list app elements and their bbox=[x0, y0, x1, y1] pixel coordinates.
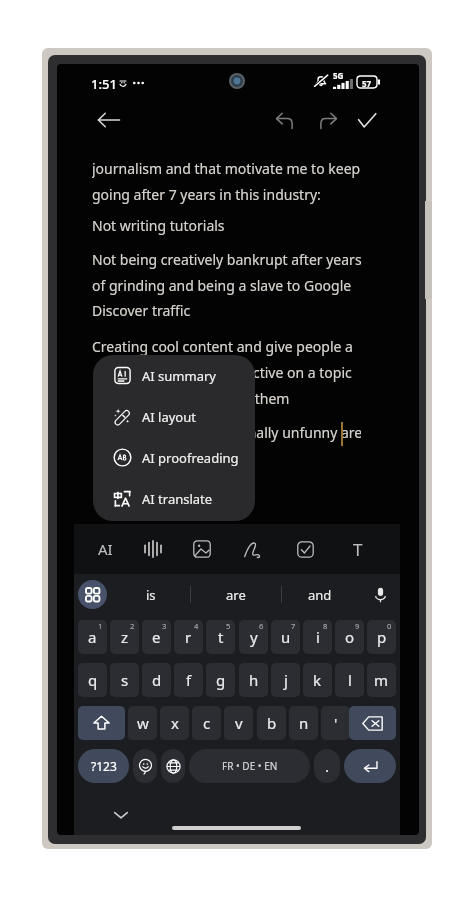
staticText: are bbox=[226, 586, 246, 604]
staticText: o bbox=[345, 627, 355, 647]
staticText: AI summary bbox=[142, 367, 216, 385]
staticText: Being sarcastic and intentionally unfunn… bbox=[66, 423, 361, 442]
button[interactable]: Symbols bbox=[78, 749, 129, 783]
button[interactable]: and bbox=[290, 580, 350, 609]
button[interactable]: u bbox=[271, 620, 300, 654]
button[interactable]: g bbox=[206, 663, 235, 697]
staticText: q bbox=[88, 670, 98, 690]
button[interactable]: AI summary bbox=[93, 355, 255, 396]
staticText: d bbox=[152, 670, 162, 690]
staticText: 57 bbox=[362, 78, 372, 89]
staticText: journalism and that motivate me to keep bbox=[92, 159, 361, 178]
staticText: n bbox=[299, 713, 309, 733]
button[interactable]: are bbox=[206, 580, 266, 609]
button[interactable]: AI layout bbox=[93, 396, 255, 437]
button[interactable]: Done bbox=[350, 103, 384, 137]
staticText: s bbox=[121, 670, 129, 690]
staticText: i bbox=[316, 627, 320, 647]
staticText: ?123 bbox=[91, 758, 117, 774]
button[interactable]: Emoji bbox=[133, 749, 157, 783]
staticText: 6 bbox=[259, 621, 264, 631]
staticText: x bbox=[171, 713, 179, 733]
staticText: FR • DE • EN bbox=[222, 759, 278, 773]
button[interactable]: Voice input bbox=[366, 580, 395, 609]
button[interactable]: Hide keyboard bbox=[106, 800, 136, 830]
staticText: ' bbox=[334, 713, 338, 733]
staticText: is bbox=[146, 586, 156, 604]
button[interactable]: AI proofreading bbox=[93, 437, 255, 478]
staticText: AI bbox=[98, 539, 113, 559]
button[interactable]: e bbox=[142, 620, 171, 654]
button[interactable]: c bbox=[192, 706, 221, 740]
staticText: 1 bbox=[98, 621, 103, 631]
button[interactable]: d bbox=[142, 663, 171, 697]
staticText: 0 bbox=[387, 621, 392, 631]
button[interactable]: v bbox=[224, 706, 253, 740]
button[interactable]: y bbox=[239, 620, 268, 654]
button[interactable]: Voice bbox=[134, 530, 172, 568]
button[interactable]: z bbox=[110, 620, 139, 654]
button[interactable]: p bbox=[367, 620, 396, 654]
staticText: r bbox=[185, 627, 192, 647]
staticText: m bbox=[374, 670, 389, 690]
button[interactable]: Back bbox=[91, 103, 125, 137]
staticText: Not being creatively bankrupt after year… bbox=[92, 250, 362, 269]
staticText: of grinding and being a slave to Google bbox=[92, 276, 352, 295]
staticText: h bbox=[249, 670, 259, 690]
button[interactable]: Change language bbox=[161, 749, 185, 783]
button[interactable]: AI bbox=[86, 530, 124, 568]
staticText: b bbox=[267, 713, 277, 733]
button[interactable]: m bbox=[367, 663, 396, 697]
staticText: w bbox=[137, 713, 149, 733]
button[interactable]: a bbox=[78, 620, 107, 654]
button[interactable]: w bbox=[128, 706, 157, 740]
button[interactable]: Shift bbox=[78, 706, 125, 740]
button[interactable]: ' bbox=[321, 706, 350, 740]
button[interactable]: Backspace bbox=[349, 706, 396, 740]
staticText: 1:51 bbox=[91, 75, 117, 93]
staticText: Discover traffic bbox=[92, 301, 191, 320]
button[interactable]: Space bbox=[189, 749, 310, 783]
button[interactable]: Image bbox=[183, 530, 221, 568]
button[interactable]: h bbox=[239, 663, 268, 697]
staticText: k bbox=[313, 670, 322, 690]
button[interactable]: Draw bbox=[234, 530, 272, 568]
button[interactable]: j bbox=[271, 663, 300, 697]
button[interactable]: Redo bbox=[311, 103, 345, 137]
button[interactable]: f bbox=[174, 663, 203, 697]
staticText: . bbox=[325, 756, 330, 776]
staticText: u bbox=[281, 627, 291, 647]
button[interactable]: l bbox=[335, 663, 364, 697]
button[interactable]: k bbox=[303, 663, 332, 697]
staticText: that may genuinely help them bbox=[92, 389, 290, 408]
button[interactable]: b bbox=[257, 706, 286, 740]
button[interactable]: Undo bbox=[267, 103, 301, 137]
staticText: 8 bbox=[323, 621, 328, 631]
staticText: 5 bbox=[226, 621, 231, 631]
button[interactable]: Period bbox=[314, 749, 340, 783]
button[interactable]: t bbox=[206, 620, 235, 654]
staticText: j bbox=[284, 670, 288, 690]
staticText: 3 bbox=[162, 621, 167, 631]
button[interactable]: Toolbar menu bbox=[78, 580, 107, 609]
button[interactable]: Text format bbox=[339, 530, 377, 568]
staticText: v bbox=[235, 713, 243, 733]
button[interactable]: Enter bbox=[344, 749, 396, 783]
button[interactable]: AI translate bbox=[93, 478, 255, 519]
staticText: AI layout bbox=[142, 408, 196, 426]
staticText: Not writing tutorials bbox=[92, 216, 225, 235]
button[interactable]: is bbox=[121, 580, 181, 609]
button[interactable]: q bbox=[78, 663, 107, 697]
staticText: a bbox=[88, 627, 97, 647]
button[interactable]: Checklist bbox=[286, 530, 324, 568]
button[interactable]: r bbox=[174, 620, 203, 654]
staticText: e bbox=[152, 627, 161, 647]
button[interactable]: o bbox=[335, 620, 364, 654]
button[interactable]: n bbox=[289, 706, 318, 740]
staticText: 4 bbox=[194, 621, 199, 631]
button[interactable]: i bbox=[303, 620, 332, 654]
staticText: 7 bbox=[291, 621, 296, 631]
button[interactable]: x bbox=[160, 706, 189, 740]
staticText: going after 7 years in this industry: bbox=[92, 185, 321, 204]
button[interactable]: s bbox=[110, 663, 139, 697]
